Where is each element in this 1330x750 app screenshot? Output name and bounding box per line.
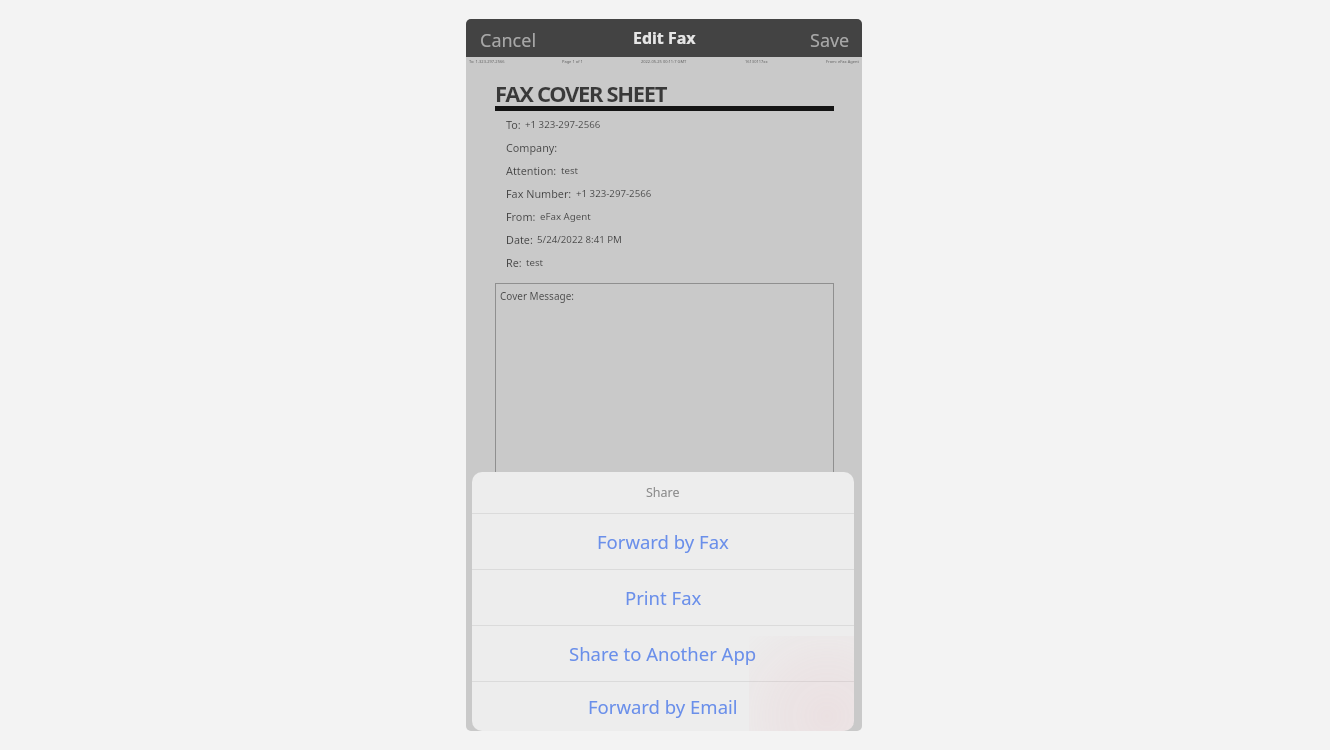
staticText: 2022-05-25 00:11:7 GMT [641,59,687,64]
staticText: Date: [506,232,533,247]
staticText: Share [646,484,680,501]
button[interactable]: Save [796,19,862,57]
staticText: 5/24/2022 8:41 PM [537,233,622,246]
staticText: To: 1-323-297-2566 [469,59,505,64]
staticText: Forward by Email [588,694,738,719]
staticText: From: eFax Agent [826,59,859,64]
staticText: FAX COVER SHEET [495,78,666,108]
staticText: Forward by Fax [597,529,729,554]
staticText: Attention: [506,163,557,178]
staticText: eFax Agent [540,210,591,223]
staticText: +1 323-297-2566 [576,187,652,200]
button[interactable]: Print Fax [472,570,854,625]
staticText: +1 323-297-2566 [525,118,601,131]
staticText: Save [810,28,850,48]
button[interactable]: Forward by Fax [472,514,854,569]
staticText: Share to Another App [569,641,757,666]
staticText: Fax Number: [506,186,572,201]
staticText: Cover Message: [500,289,574,303]
button[interactable]: Cancel [466,19,551,57]
staticText: Re: [506,255,522,270]
staticText: Company: [506,140,558,155]
staticText: Edit Fax [633,27,696,49]
staticText: test [526,256,544,269]
button[interactable]: Forward by Email [472,682,854,731]
staticText: 16130117xx [745,59,768,64]
staticText: To: [506,117,521,132]
staticText: test [561,164,579,177]
button[interactable]: Share to Another App [472,626,854,681]
staticText: Cancel [480,28,537,48]
staticText: From: [506,209,536,224]
staticText: Page 1 of 1 [562,59,583,64]
staticText: Print Fax [625,585,702,610]
